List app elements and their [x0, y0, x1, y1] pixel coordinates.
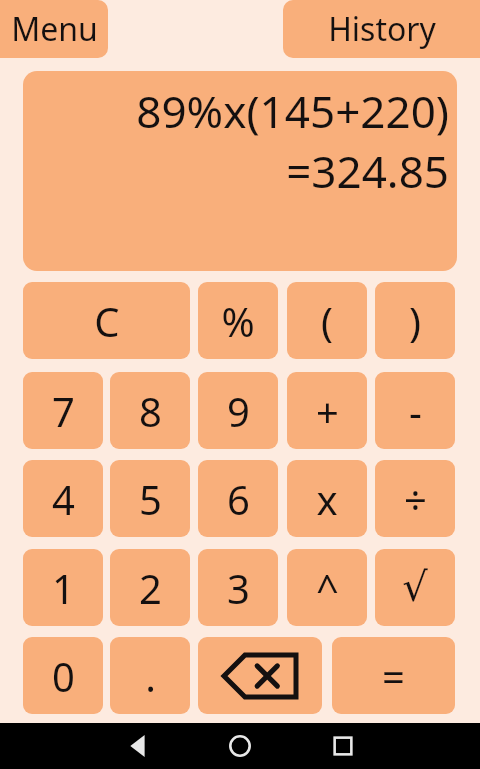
staticText: 1: [52, 561, 75, 615]
staticText: 9: [227, 384, 250, 438]
staticText: x: [316, 472, 338, 526]
button[interactable]: 8: [110, 372, 190, 449]
button[interactable]: 0: [23, 637, 103, 714]
staticText: +: [316, 384, 339, 438]
staticText: -: [409, 384, 422, 438]
staticText: ÷: [404, 472, 427, 526]
staticText: 4: [52, 472, 75, 526]
button[interactable]: 7: [23, 372, 103, 449]
staticText: History: [328, 7, 436, 51]
staticText: Menu: [11, 7, 98, 51]
staticText: 6: [227, 472, 250, 526]
button[interactable]: .: [110, 637, 190, 714]
button[interactable]: 5: [110, 460, 190, 537]
staticText: =: [382, 649, 405, 703]
staticText: ): [409, 294, 421, 348]
button[interactable]: √: [375, 549, 455, 626]
staticText: 8: [139, 384, 162, 438]
button[interactable]: C: [23, 282, 190, 359]
button[interactable]: ): [375, 282, 455, 359]
staticText: 2: [139, 561, 162, 615]
button[interactable]: 89%x(145+220): [23, 71, 457, 271]
button[interactable]: -: [375, 372, 455, 449]
button[interactable]: 6: [198, 460, 278, 537]
button[interactable]: 4: [23, 460, 103, 537]
button[interactable]: x: [287, 460, 367, 537]
staticText: 7: [52, 384, 75, 438]
staticText: .: [145, 649, 156, 703]
button[interactable]: ÷: [375, 460, 455, 537]
button[interactable]: (: [287, 282, 367, 359]
button[interactable]: History: [283, 0, 480, 58]
staticText: =324.85: [286, 141, 449, 201]
staticText: √: [402, 564, 428, 611]
staticText: ^: [316, 561, 339, 615]
staticText: 5: [139, 472, 162, 526]
button[interactable]: 3: [198, 549, 278, 626]
button[interactable]: +: [287, 372, 367, 449]
button[interactable]: 2: [110, 549, 190, 626]
button[interactable]: 1: [23, 549, 103, 626]
button[interactable]: Menu: [0, 0, 108, 58]
staticText: C: [94, 294, 120, 348]
button[interactable]: ^: [287, 549, 367, 626]
staticText: (: [321, 294, 333, 348]
button[interactable]: 9: [198, 372, 278, 449]
button[interactable]: =: [332, 637, 455, 714]
button[interactable]: Backspace: [198, 637, 322, 714]
staticText: %: [221, 294, 255, 348]
staticText: 0: [52, 649, 75, 703]
staticText: 3: [227, 561, 250, 615]
staticText: 89%x(145+220): [136, 81, 449, 141]
button[interactable]: %: [198, 282, 278, 359]
